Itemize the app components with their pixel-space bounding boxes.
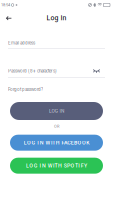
staticText: Log In bbox=[46, 14, 66, 22]
button[interactable]: LOG IN WITH FACEBOOK bbox=[10, 135, 103, 151]
button[interactable]: LOG IN WITH SPOTIFY bbox=[10, 158, 103, 174]
button[interactable]: Forgot password? bbox=[8, 85, 43, 94]
staticText: LOG IN bbox=[49, 108, 64, 114]
staticText: Email address bbox=[8, 40, 35, 46]
staticText: LOG IN WITH SPOTIFY bbox=[26, 163, 87, 169]
staticText: Forgot password? bbox=[8, 87, 43, 92]
button[interactable]: Show password bbox=[93, 69, 105, 73]
staticText: 18:54 bbox=[1, 3, 10, 7]
button[interactable]: Back bbox=[4, 14, 14, 23]
staticText: OR bbox=[54, 124, 59, 129]
button[interactable]: LOG IN bbox=[10, 102, 103, 120]
staticText: LOG IN WITH FACEBOOK bbox=[24, 140, 89, 146]
staticText: Password (8+ characters) bbox=[8, 68, 57, 74]
